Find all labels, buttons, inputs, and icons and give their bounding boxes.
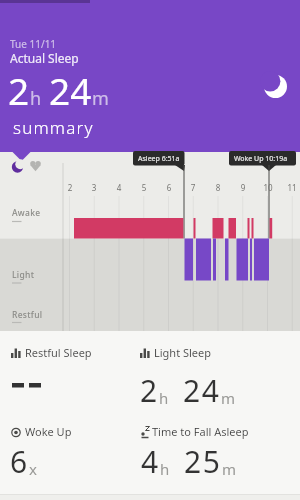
- staticText: 5: [136, 182, 152, 193]
- staticText: Tue 11/11: [10, 37, 57, 51]
- staticText: Awake: [12, 207, 41, 219]
- staticText: h: [159, 388, 169, 408]
- staticText: 24: [183, 370, 221, 411]
- staticText: 10: [260, 182, 276, 193]
- staticText: 3: [86, 182, 102, 193]
- staticText: Restful Sleep: [25, 345, 92, 360]
- staticText: h: [160, 459, 170, 479]
- staticText: 6: [161, 182, 177, 193]
- staticText: Time to Fall Asleep: [152, 424, 249, 439]
- staticText: 24: [49, 65, 92, 115]
- staticText: Asleep 6:51a: [138, 154, 180, 164]
- staticText: 25: [184, 441, 222, 482]
- staticText: m: [222, 459, 237, 479]
- staticText: 4: [141, 441, 160, 482]
- button[interactable]: [8, 157, 28, 177]
- staticText: 2: [62, 182, 78, 193]
- staticText: 9: [235, 182, 251, 193]
- staticText: 2: [8, 65, 30, 115]
- staticText: m: [221, 388, 236, 408]
- staticText: Restful: [12, 309, 43, 321]
- staticText: Woke Up 10:19a: [234, 154, 288, 164]
- staticText: 4: [111, 182, 127, 193]
- staticText: 11: [284, 182, 300, 193]
- staticText: 8: [210, 182, 226, 193]
- staticText: Light: [12, 269, 35, 281]
- staticText: Light Sleep: [154, 345, 212, 360]
- staticText: Woke Up: [25, 424, 72, 439]
- staticText: summary: [13, 116, 94, 139]
- staticText: 6: [10, 441, 29, 482]
- staticText: x: [29, 459, 37, 479]
- staticText: h: [30, 86, 42, 111]
- button[interactable]: [28, 157, 46, 175]
- staticText: Actual Sleep: [10, 50, 79, 66]
- staticText: 7: [185, 182, 201, 193]
- staticText: 2: [140, 370, 159, 411]
- staticText: m: [92, 86, 109, 111]
- button[interactable]: summary: [0, 110, 120, 146]
